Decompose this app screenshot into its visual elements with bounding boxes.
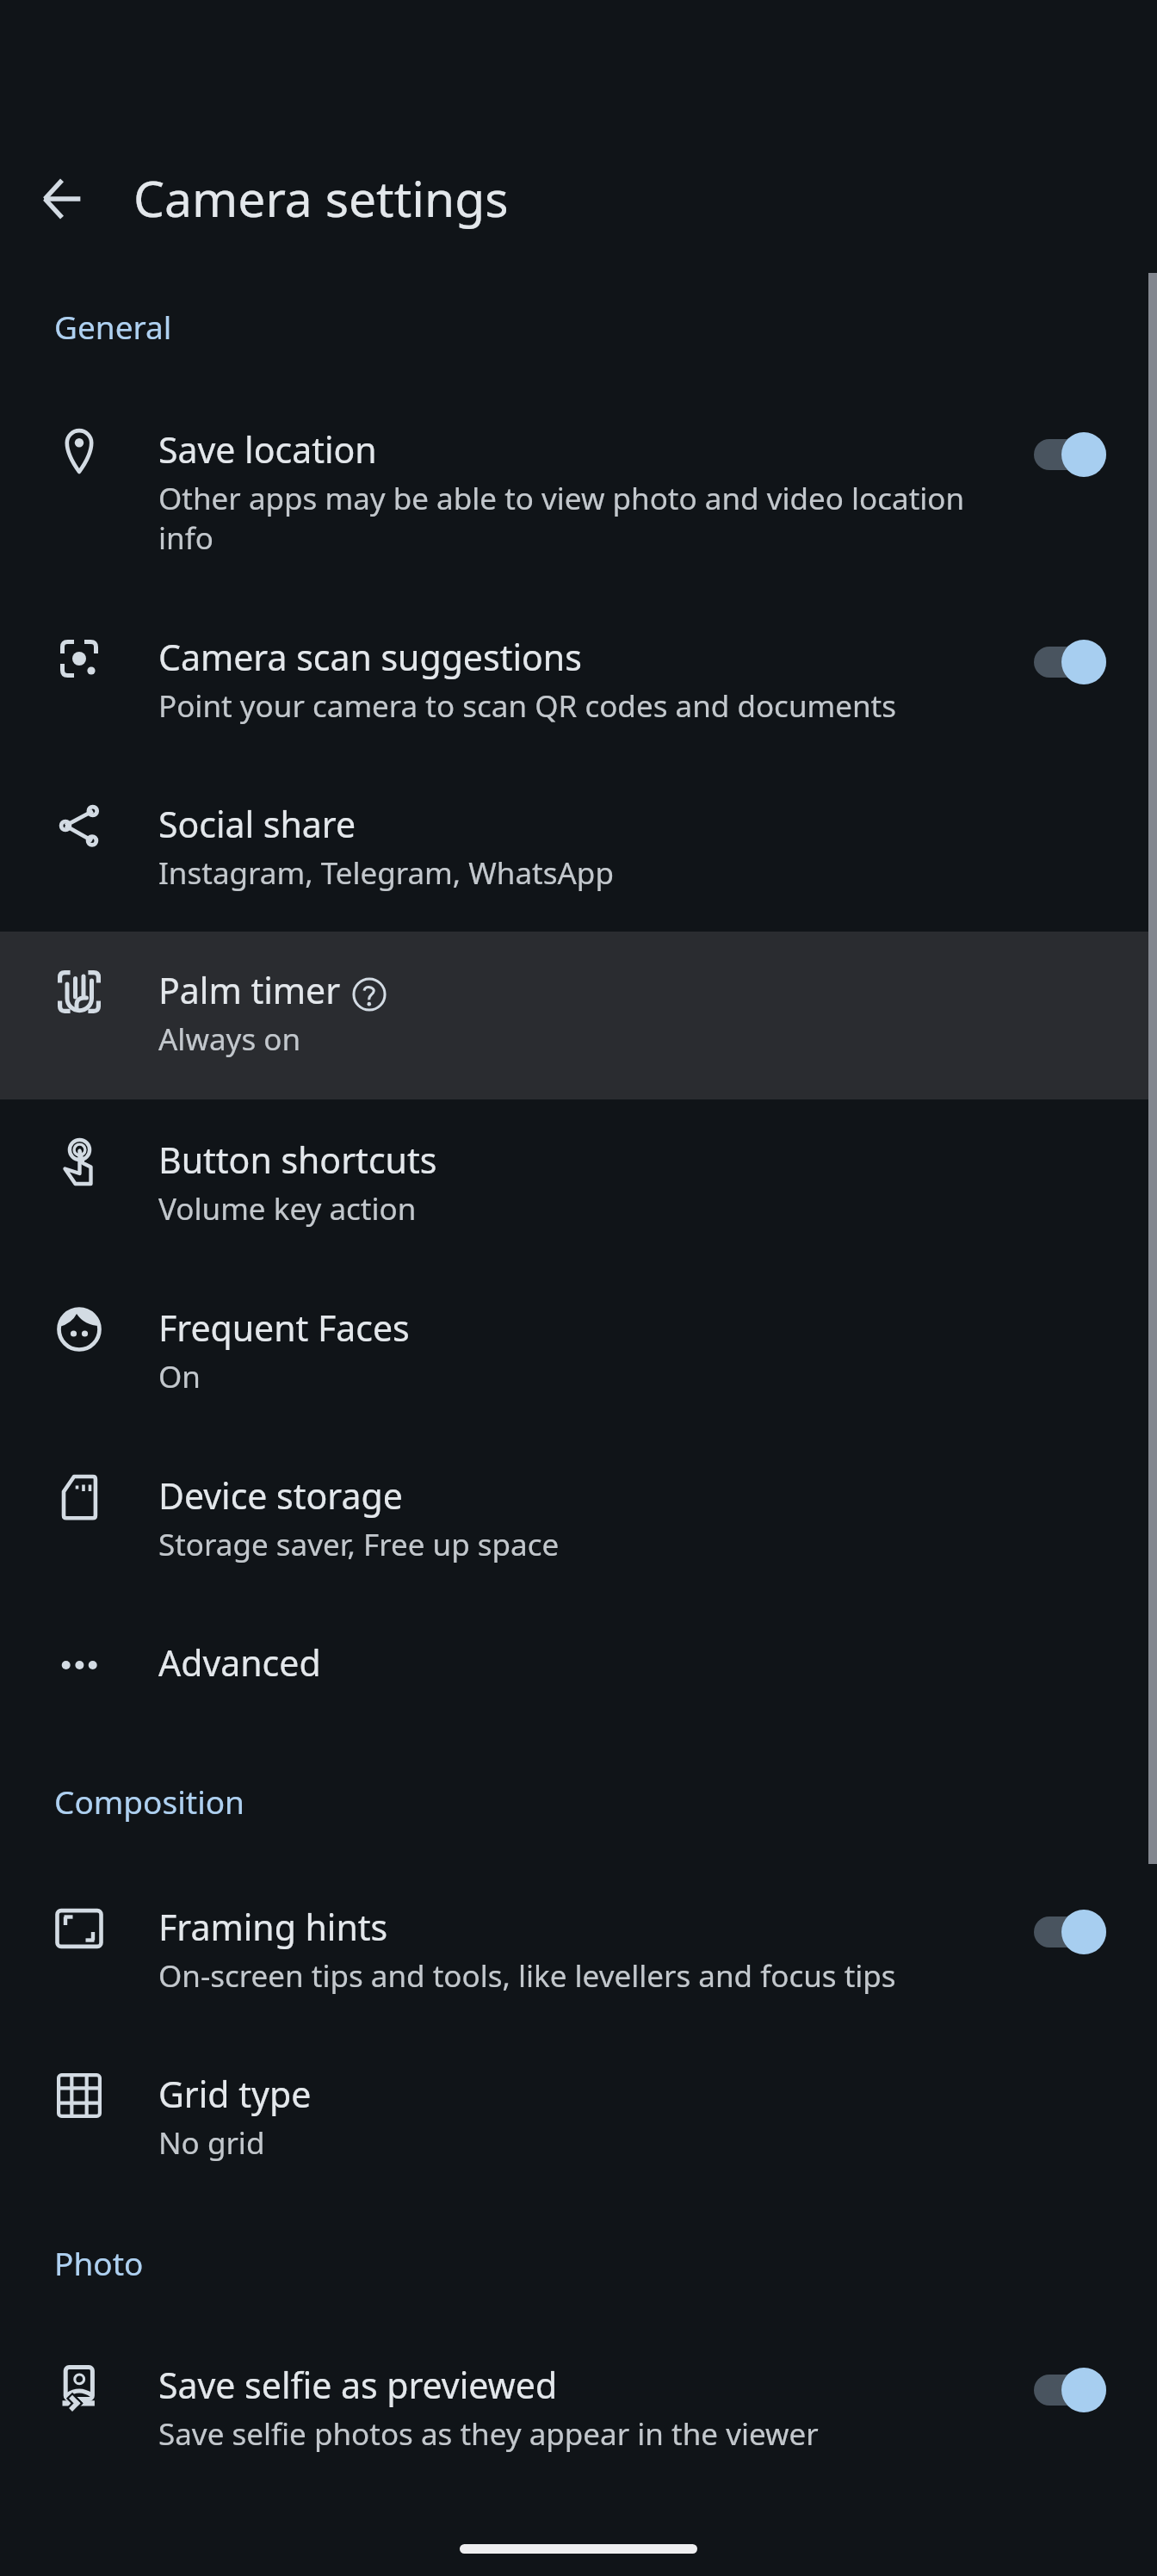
staticText: Always on: [158, 1019, 301, 1060]
staticText: No grid: [158, 2122, 265, 2164]
staticText: Composition: [54, 1780, 244, 1823]
button[interactable]: Frequent Faces: [0, 1269, 1157, 1437]
staticText: On: [158, 1356, 201, 1397]
staticText: General: [54, 305, 172, 348]
staticText: Instagram, Telegram, WhatsApp: [158, 852, 614, 894]
staticText: Social share: [158, 800, 356, 848]
button[interactable]: Toggle Save location: [1020, 418, 1123, 491]
staticText: Camera scan suggestions: [158, 633, 582, 681]
button[interactable]: Device storage: [0, 1437, 1157, 1605]
button[interactable]: Toggle Camera scan suggestions: [1020, 626, 1123, 698]
button[interactable]: Framing hints: [0, 1868, 1157, 2036]
staticText: Palm timer: [158, 966, 341, 1014]
button[interactable]: Save selfie as previewed: [0, 2326, 1157, 2494]
button[interactable]: Button shortcuts: [0, 1101, 1157, 1269]
button[interactable]: Grid type: [0, 2035, 1157, 2203]
staticText: Save selfie photos as they appear in the…: [158, 2413, 819, 2455]
staticText: Volume key action: [158, 1188, 417, 1229]
button[interactable]: Save location: [0, 391, 1157, 598]
staticText: Point your camera to scan QR codes and d…: [158, 685, 897, 727]
staticText: Storage saver, Free up space: [158, 1524, 560, 1565]
button[interactable]: Toggle Framing hints: [1020, 1896, 1123, 1968]
staticText: On-screen tips and tools, like levellers…: [158, 1955, 896, 1997]
button[interactable]: Back: [21, 158, 103, 240]
staticText: Framing hints: [158, 1903, 388, 1951]
button[interactable]: Palm timer: [0, 932, 1157, 1099]
button[interactable]: Camera scan suggestions: [0, 598, 1157, 766]
staticText: Frequent Faces: [158, 1303, 410, 1352]
staticText: info: [158, 517, 213, 559]
staticText: Device storage: [158, 1471, 403, 1520]
staticText: Photo: [54, 2241, 144, 2284]
button[interactable]: Advanced: [0, 1604, 1157, 1725]
button[interactable]: Social share: [0, 765, 1157, 933]
staticText: Grid type: [158, 2070, 312, 2118]
staticText: Camera settings: [133, 164, 509, 232]
staticText: Button shortcuts: [158, 1136, 437, 1184]
staticText: Advanced: [158, 1638, 321, 1687]
button[interactable]: Help: [351, 976, 387, 1012]
button[interactable]: Toggle Save selfie as previewed: [1020, 2354, 1123, 2426]
staticText: Save location: [158, 425, 377, 474]
staticText: Other apps may be able to view photo and…: [158, 478, 965, 519]
staticText: Save selfie as previewed: [158, 2361, 558, 2409]
